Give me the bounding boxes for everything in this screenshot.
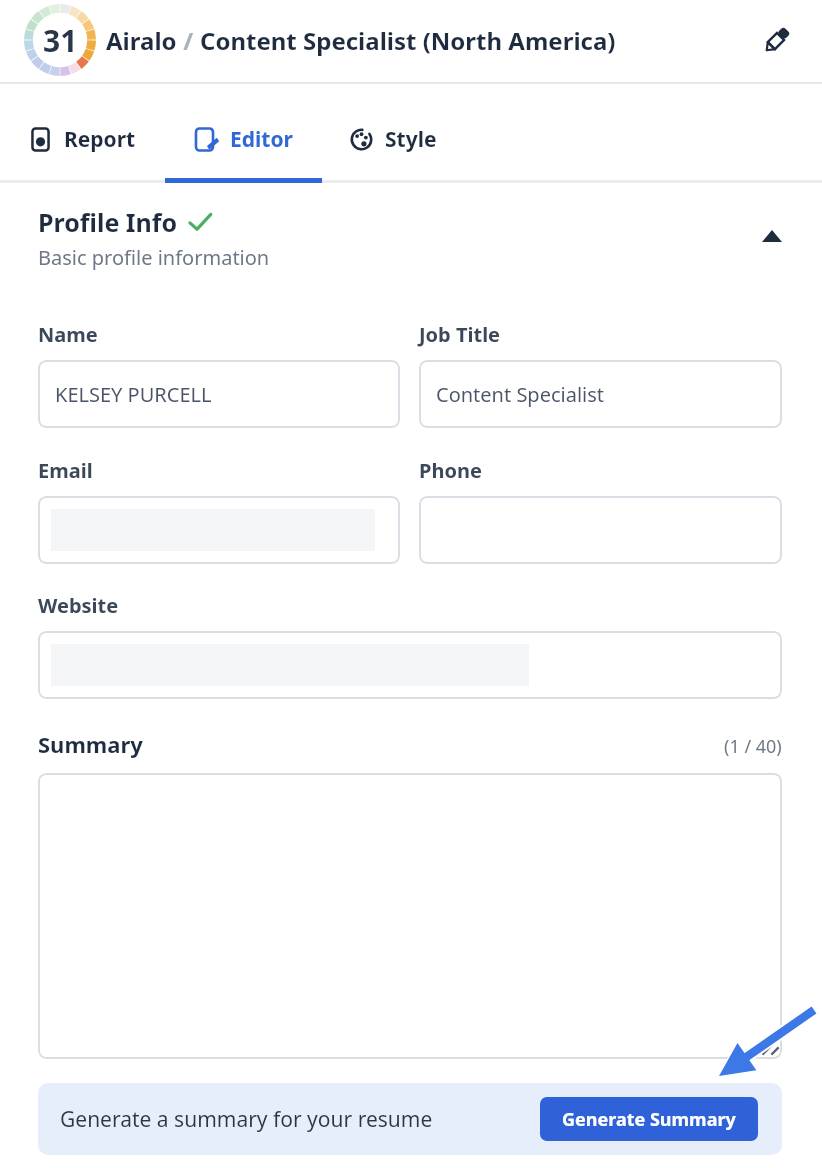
- button[interactable]: [38, 773, 782, 1059]
- button[interactable]: Style: [322, 84, 465, 183]
- staticText: Phone: [419, 457, 482, 484]
- button[interactable]: [762, 25, 792, 55]
- button[interactable]: Generate Summary: [540, 1097, 758, 1141]
- staticText: Report: [64, 125, 136, 154]
- staticText: KELSEY PURCELL: [55, 381, 212, 408]
- staticText: Summary: [38, 729, 143, 759]
- button[interactable]: KELSEY PURCELL: [38, 360, 400, 428]
- staticText: (1 / 40): [724, 734, 782, 759]
- staticText: 31: [43, 20, 78, 61]
- staticText: Editor: [230, 125, 293, 154]
- staticText: Content Specialist: [436, 381, 605, 408]
- staticText: Profile Info: [38, 205, 178, 239]
- button[interactable]: Profile Info: [38, 205, 782, 239]
- staticText: Email: [38, 457, 93, 484]
- staticText: Style: [385, 125, 437, 154]
- staticText: Basic profile information: [38, 244, 270, 271]
- staticText: /: [177, 24, 200, 57]
- staticText: Generate a summary for your resume: [60, 1105, 433, 1134]
- button[interactable]: [419, 496, 782, 564]
- button[interactable]: [38, 496, 400, 564]
- button[interactable]: [38, 631, 782, 699]
- staticText: Job Title: [419, 321, 501, 348]
- staticText: Generate Summary: [562, 1107, 736, 1132]
- staticText: Airalo: [106, 24, 177, 57]
- staticText: Name: [38, 321, 98, 348]
- staticText: Website: [38, 592, 119, 619]
- button[interactable]: Editor: [165, 84, 322, 183]
- button[interactable]: Report: [0, 84, 165, 183]
- staticText: Content Specialist (North America): [200, 24, 616, 57]
- button[interactable]: Content Specialist: [419, 360, 782, 428]
